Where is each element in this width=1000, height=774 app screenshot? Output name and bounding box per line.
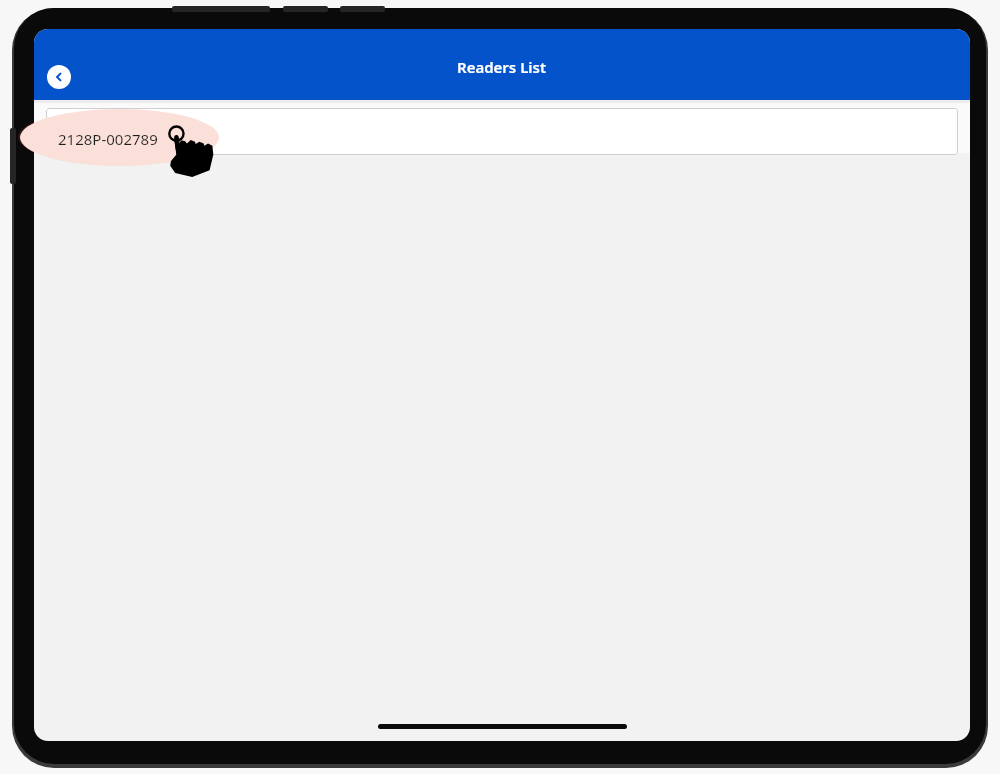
staticText: 2128P-002789 <box>58 129 158 149</box>
staticText: 2128P-002789 <box>59 122 159 142</box>
button[interactable]: Back <box>47 65 71 89</box>
staticText: Readers List <box>457 57 547 77</box>
button[interactable]: 2128P-002789 <box>46 108 958 155</box>
